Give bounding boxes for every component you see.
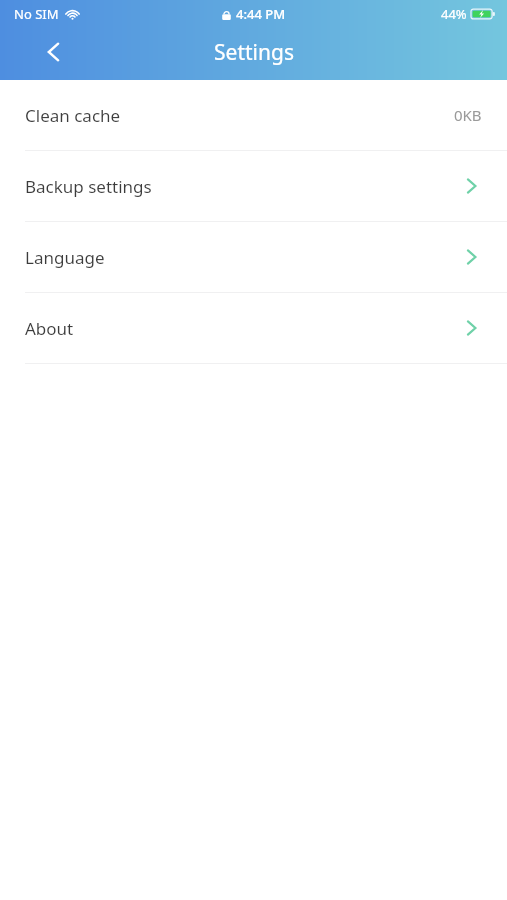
staticText: Language [25,246,105,269]
button[interactable]: Backup settings [0,151,507,221]
staticText: Settings [214,38,294,67]
staticText: 4:44 PM [236,5,286,23]
staticText: No SIM [14,5,59,23]
button[interactable]: Language [0,222,507,292]
staticText: Backup settings [25,175,152,198]
staticText: Clean cache [25,104,121,127]
button[interactable]: About [0,293,507,363]
staticText: 44% [441,5,467,23]
staticText: About [25,317,74,340]
button[interactable]: Back [30,28,78,76]
button[interactable]: Clean cache [0,80,507,150]
staticText: 0KB [454,105,482,125]
